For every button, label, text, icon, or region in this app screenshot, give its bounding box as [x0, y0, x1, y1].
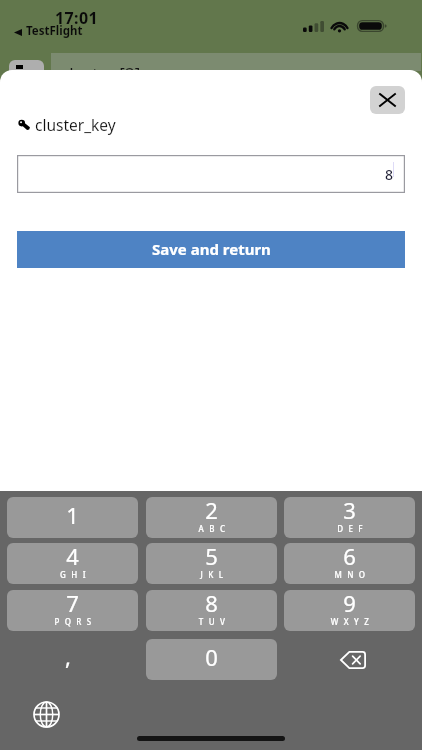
- staticText: 5: [146, 543, 277, 571]
- button[interactable]: 2: [146, 497, 277, 538]
- staticText: Save and return: [152, 239, 271, 259]
- staticText: cluster [2]: [61, 62, 141, 85]
- button[interactable]: 6: [284, 543, 415, 584]
- staticText: WXYZ: [287, 616, 415, 627]
- staticText: ,: [65, 641, 71, 671]
- staticText: 0: [146, 642, 277, 672]
- staticText: MNO: [287, 569, 415, 580]
- staticText: 8: [146, 590, 277, 618]
- staticText: 8: [385, 165, 394, 184]
- staticText: 7: [7, 590, 138, 618]
- staticText: 1: [7, 500, 138, 530]
- button[interactable]: 4: [7, 543, 138, 584]
- staticText: cluster_key: [35, 114, 116, 135]
- button[interactable]: Save and return: [17, 231, 405, 268]
- staticText: TUV: [149, 616, 277, 627]
- button[interactable]: Close: [370, 86, 405, 114]
- button[interactable]: Backspace: [284, 639, 415, 680]
- button[interactable]: 8: [146, 590, 277, 631]
- button[interactable]: 9: [284, 590, 415, 631]
- staticText: 9: [284, 590, 415, 618]
- staticText: 4: [7, 543, 138, 571]
- button[interactable]: ,: [7, 639, 138, 680]
- staticText: DEF: [287, 523, 415, 534]
- staticText: PQRS: [10, 616, 138, 627]
- button[interactable]: 8: [17, 155, 405, 193]
- staticText: 3: [284, 497, 415, 525]
- staticText: ABC: [149, 523, 277, 534]
- button[interactable]: 1: [7, 497, 138, 538]
- button[interactable]: 7: [7, 590, 138, 631]
- staticText: TestFlight: [26, 23, 83, 39]
- button[interactable]: 5: [146, 543, 277, 584]
- staticText: JKL: [149, 569, 277, 580]
- staticText: 6: [284, 543, 415, 571]
- button[interactable]: 0: [146, 639, 277, 680]
- staticText: 2: [146, 497, 277, 525]
- staticText: GHI: [10, 569, 138, 580]
- button[interactable]: Back to TestFlight: [14, 23, 83, 39]
- staticText: 17:01: [55, 7, 99, 29]
- button[interactable]: 3: [284, 497, 415, 538]
- button[interactable]: Change keyboard: [31, 699, 61, 729]
